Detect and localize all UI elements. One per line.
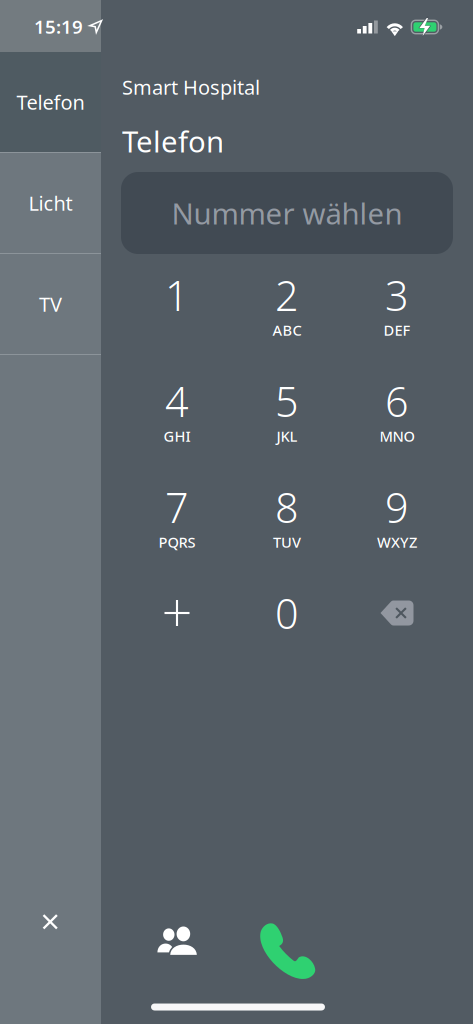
staticText: 8 (275, 480, 299, 534)
button[interactable]: Telefon (0, 52, 101, 152)
staticText: WXYZ (377, 532, 417, 552)
button[interactable]: Anrufen (241, 913, 333, 989)
staticText: 2 (275, 268, 299, 322)
button[interactable]: Kontakte (130, 901, 222, 977)
button[interactable]: TV (0, 254, 101, 354)
staticText: TV (39, 291, 62, 317)
staticText: Telefon (122, 121, 224, 160)
staticText: 5 (275, 374, 299, 428)
staticText: Smart Hospital (122, 74, 260, 100)
staticText: Nummer wählen (171, 193, 402, 232)
staticText: GHI (163, 426, 190, 446)
button[interactable]: Nummer wählen (121, 172, 453, 254)
staticText: 7 (165, 480, 189, 534)
button[interactable]: 6 (342, 371, 452, 477)
staticText: JKL (276, 426, 297, 446)
staticText: Licht (28, 190, 72, 216)
staticText: DEF (383, 320, 410, 340)
staticText: 4 (165, 374, 189, 428)
staticText: 6 (385, 374, 409, 428)
staticText: 0 (275, 586, 299, 640)
button[interactable]: 7 (122, 477, 232, 583)
staticText: MNO (379, 426, 414, 446)
staticText: 3 (385, 268, 409, 322)
button[interactable]: 3 (342, 265, 452, 371)
button[interactable]: Licht (0, 153, 101, 253)
staticText: PQRS (158, 532, 195, 552)
staticText: 1 (165, 268, 189, 322)
button[interactable]: 9 (342, 477, 452, 583)
button[interactable]: 8 (232, 477, 342, 583)
staticText: 15:19 (34, 14, 83, 39)
button[interactable]: Schließen (20, 892, 80, 952)
button[interactable] (122, 583, 232, 689)
button[interactable]: 4 (122, 371, 232, 477)
button[interactable]: Löschen (342, 583, 452, 689)
staticText: 9 (385, 480, 409, 534)
staticText: Telefon (16, 89, 84, 115)
button[interactable]: 1 (122, 265, 232, 371)
button[interactable]: 0 (232, 583, 342, 689)
staticText: ABC (272, 320, 301, 340)
button[interactable]: 2 (232, 265, 342, 371)
staticText: TUV (273, 532, 301, 552)
button[interactable]: 5 (232, 371, 342, 477)
